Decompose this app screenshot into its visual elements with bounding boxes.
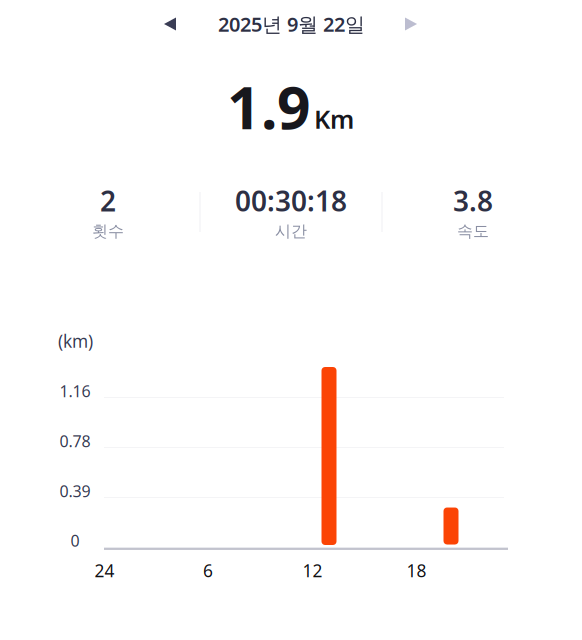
staticText: 18 — [406, 559, 426, 582]
staticText: 횟수 — [92, 221, 124, 241]
button[interactable]: 2 — [33, 179, 183, 243]
staticText: 시간 — [275, 221, 307, 241]
staticText: 2 — [100, 182, 116, 219]
staticText: 0 — [70, 530, 79, 551]
staticText: 00:30:18 — [235, 182, 347, 219]
staticText: 속도 — [457, 221, 489, 241]
button[interactable]: 00:30:18 — [216, 179, 366, 243]
staticText: 1.16 — [59, 380, 90, 402]
staticText: (km) — [58, 329, 93, 352]
staticText: 0.39 — [59, 480, 90, 502]
staticText: 0.78 — [59, 430, 90, 452]
button[interactable]: Next day — [389, 3, 433, 45]
button[interactable]: 3.8 — [398, 179, 548, 243]
staticText: 1.9 — [227, 67, 311, 145]
staticText: 24 — [94, 559, 114, 582]
staticText: 6 — [203, 559, 213, 582]
button[interactable]: Previous day — [148, 3, 192, 45]
staticText: 12 — [302, 559, 322, 582]
staticText: 2025년 9월 22일 — [218, 11, 365, 37]
staticText: Km — [314, 102, 354, 136]
staticText: 3.8 — [453, 182, 493, 219]
